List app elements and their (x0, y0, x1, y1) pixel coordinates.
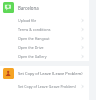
button[interactable]: Open the Hangout (0, 33, 89, 42)
staticText: Terms & conditions (18, 27, 51, 32)
staticText: Set Copy of Leave (Leave Problem) (18, 84, 76, 89)
staticText: Barcelona (18, 5, 39, 11)
staticText: Open the Hangout (18, 36, 50, 41)
staticText: Upload file (18, 18, 37, 23)
button[interactable]: Terms & conditions (0, 24, 89, 33)
button[interactable]: Barcelona (0, 0, 89, 15)
staticText: Set Copy of Leave (Leave Problem) (18, 71, 83, 76)
staticText: Open the Drive (18, 45, 44, 50)
button[interactable]: Set Copy of Leave (Leave Problem) (0, 66, 89, 81)
button[interactable]: Upload file (0, 15, 89, 24)
button[interactable]: Set Copy of Leave (Leave Problem) (0, 81, 89, 90)
staticText: Open the Gallery (18, 54, 47, 59)
button[interactable]: Open the Drive (0, 42, 89, 51)
button[interactable]: Open the Gallery (0, 51, 89, 60)
